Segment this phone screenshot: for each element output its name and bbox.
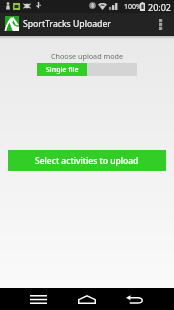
button[interactable]: Single file xyxy=(37,63,87,76)
button[interactable]: Recent apps xyxy=(22,288,54,310)
staticText: SportTracks Uploader xyxy=(23,18,111,30)
button[interactable]: Back xyxy=(118,288,150,310)
staticText: Single file xyxy=(46,65,79,75)
staticText: 100% xyxy=(124,2,142,12)
staticText: Choose upload mode xyxy=(51,51,123,61)
button[interactable]: More options xyxy=(156,13,174,36)
button[interactable]: Home xyxy=(71,288,103,310)
button[interactable]: Select activities to upload xyxy=(8,150,166,171)
staticText: 20:02 xyxy=(148,1,172,13)
staticText: Select activities to upload xyxy=(35,155,139,167)
